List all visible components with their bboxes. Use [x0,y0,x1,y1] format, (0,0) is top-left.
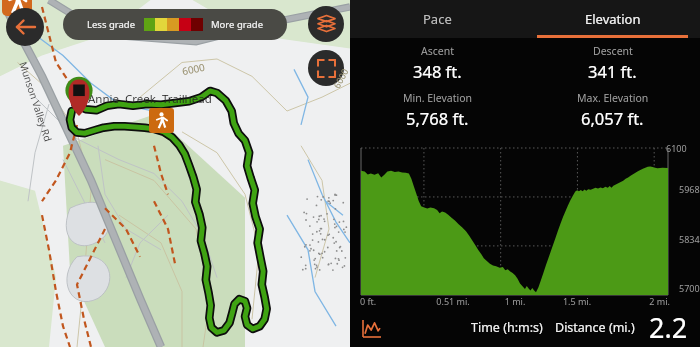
button[interactable]: Map layers [308,6,344,42]
staticText: Less grade [87,18,136,31]
staticText: More grade [211,18,264,31]
staticText: Elevation [585,10,641,28]
staticText: 5968 [679,183,700,195]
button[interactable]: Chart [350,308,700,347]
staticText: 5834 [679,233,700,245]
staticText: 341 ft. [588,60,637,82]
staticText: 6,057 ft. [581,107,644,129]
button[interactable]: Back [6,8,44,46]
other: Chart [360,317,382,339]
button[interactable]: Less grade [63,9,287,40]
staticText: Min. Elevation [403,91,473,105]
button[interactable]: Ascent [350,44,525,82]
button[interactable]: Descent [525,44,700,82]
staticText: 0 ft. [360,295,422,307]
staticText: 1 mi. [484,295,546,307]
staticText: 2.2 [649,309,688,346]
button[interactable]: Max. Elevation [525,91,700,129]
staticText: 6100 [666,142,700,154]
button[interactable]: Recenter map [308,50,344,86]
staticText: 2 mi. [608,295,670,307]
staticText: 6000 [181,60,206,78]
staticText: Pace [423,10,452,28]
button[interactable] [149,108,174,133]
button[interactable]: Min. Elevation [350,91,525,129]
staticText: 6000 [330,66,351,90]
staticText: Distance (mi.) [555,319,635,336]
staticText: Ascent [421,44,454,58]
staticText: 348 ft. [413,60,462,82]
staticText: Time (h:m:s) [471,319,543,336]
staticText: 1.5 mi. [546,295,608,307]
staticText: 5,768 ft. [406,107,469,129]
staticText: 5700 [679,282,700,294]
staticText: Max. Elevation [577,91,649,105]
staticText: Munson Valley Rd [16,60,56,144]
button[interactable]: Elevation [525,0,700,38]
staticText: 0.51 mi. [422,295,484,307]
staticText: Descent [593,44,633,58]
button[interactable]: Pace [350,0,525,38]
staticText: Annie Creek Trailhead [88,91,212,107]
